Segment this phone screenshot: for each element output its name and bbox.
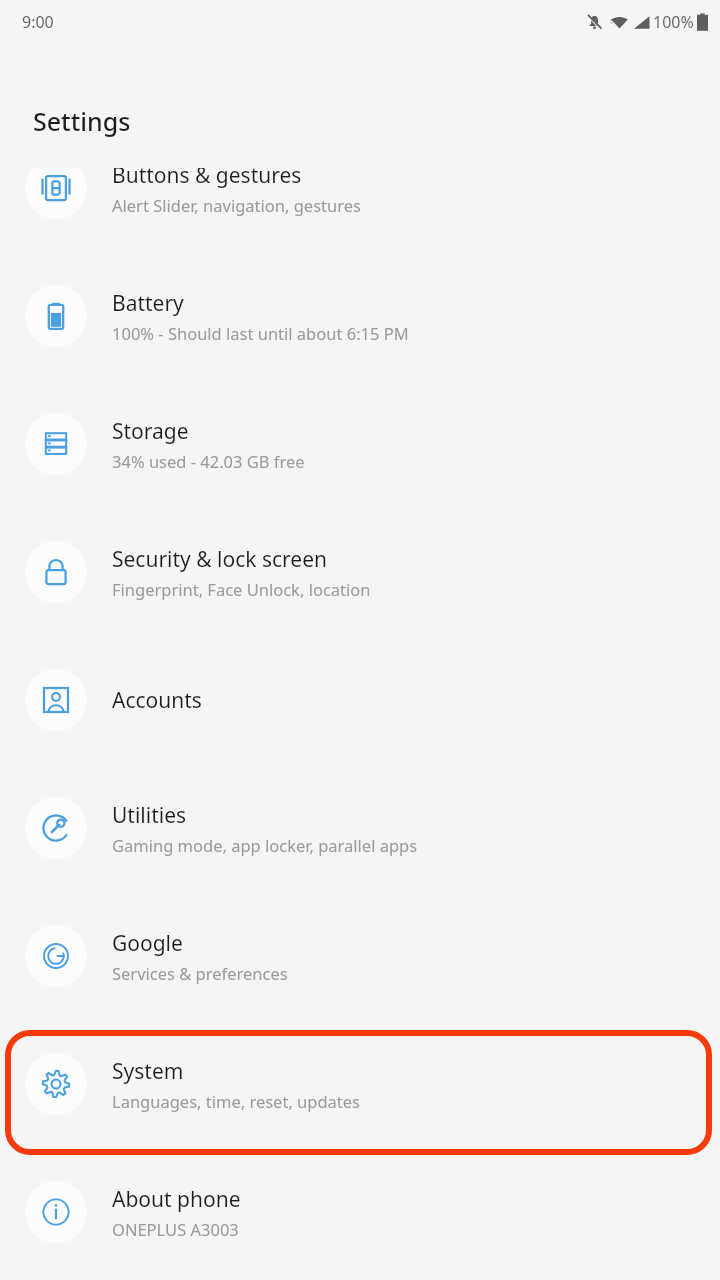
staticText: 100% bbox=[653, 11, 694, 33]
staticText: Buttons & gestures bbox=[112, 168, 302, 190]
button[interactable]: About phone bbox=[0, 1148, 720, 1276]
staticText: Google bbox=[112, 929, 183, 958]
staticText: Settings bbox=[33, 104, 131, 138]
button[interactable]: Battery bbox=[0, 252, 720, 380]
staticText: Security & lock screen bbox=[112, 545, 328, 574]
staticText: ONEPLUS A3003 bbox=[112, 1218, 239, 1240]
staticText: Accounts bbox=[112, 686, 202, 715]
button[interactable]: Storage bbox=[0, 380, 720, 508]
staticText: Gaming mode, app locker, parallel apps bbox=[112, 834, 418, 856]
button[interactable]: Accounts bbox=[0, 636, 720, 764]
button[interactable]: Utilities bbox=[0, 764, 720, 892]
staticText: Fingerprint, Face Unlock, location bbox=[112, 578, 371, 600]
button[interactable]: Buttons & gestures bbox=[0, 168, 720, 252]
staticText: Languages, time, reset, updates bbox=[112, 1090, 361, 1112]
button[interactable]: Security & lock screen bbox=[0, 508, 720, 636]
button[interactable]: Google bbox=[0, 892, 720, 1020]
staticText: Alert Slider, navigation, gestures bbox=[112, 194, 361, 216]
staticText: Utilities bbox=[112, 801, 187, 830]
staticText: 100% - Should last until about 6:15 PM bbox=[112, 322, 409, 344]
staticText: 34% used - 42.03 GB free bbox=[112, 450, 305, 472]
staticText: Services & preferences bbox=[112, 962, 288, 984]
staticText: Storage bbox=[112, 417, 189, 446]
staticText: System bbox=[112, 1057, 184, 1086]
staticText: Battery bbox=[112, 289, 184, 318]
staticText: About phone bbox=[112, 1185, 241, 1214]
staticText: 9:00 bbox=[22, 11, 54, 33]
button[interactable]: System bbox=[0, 1020, 720, 1148]
